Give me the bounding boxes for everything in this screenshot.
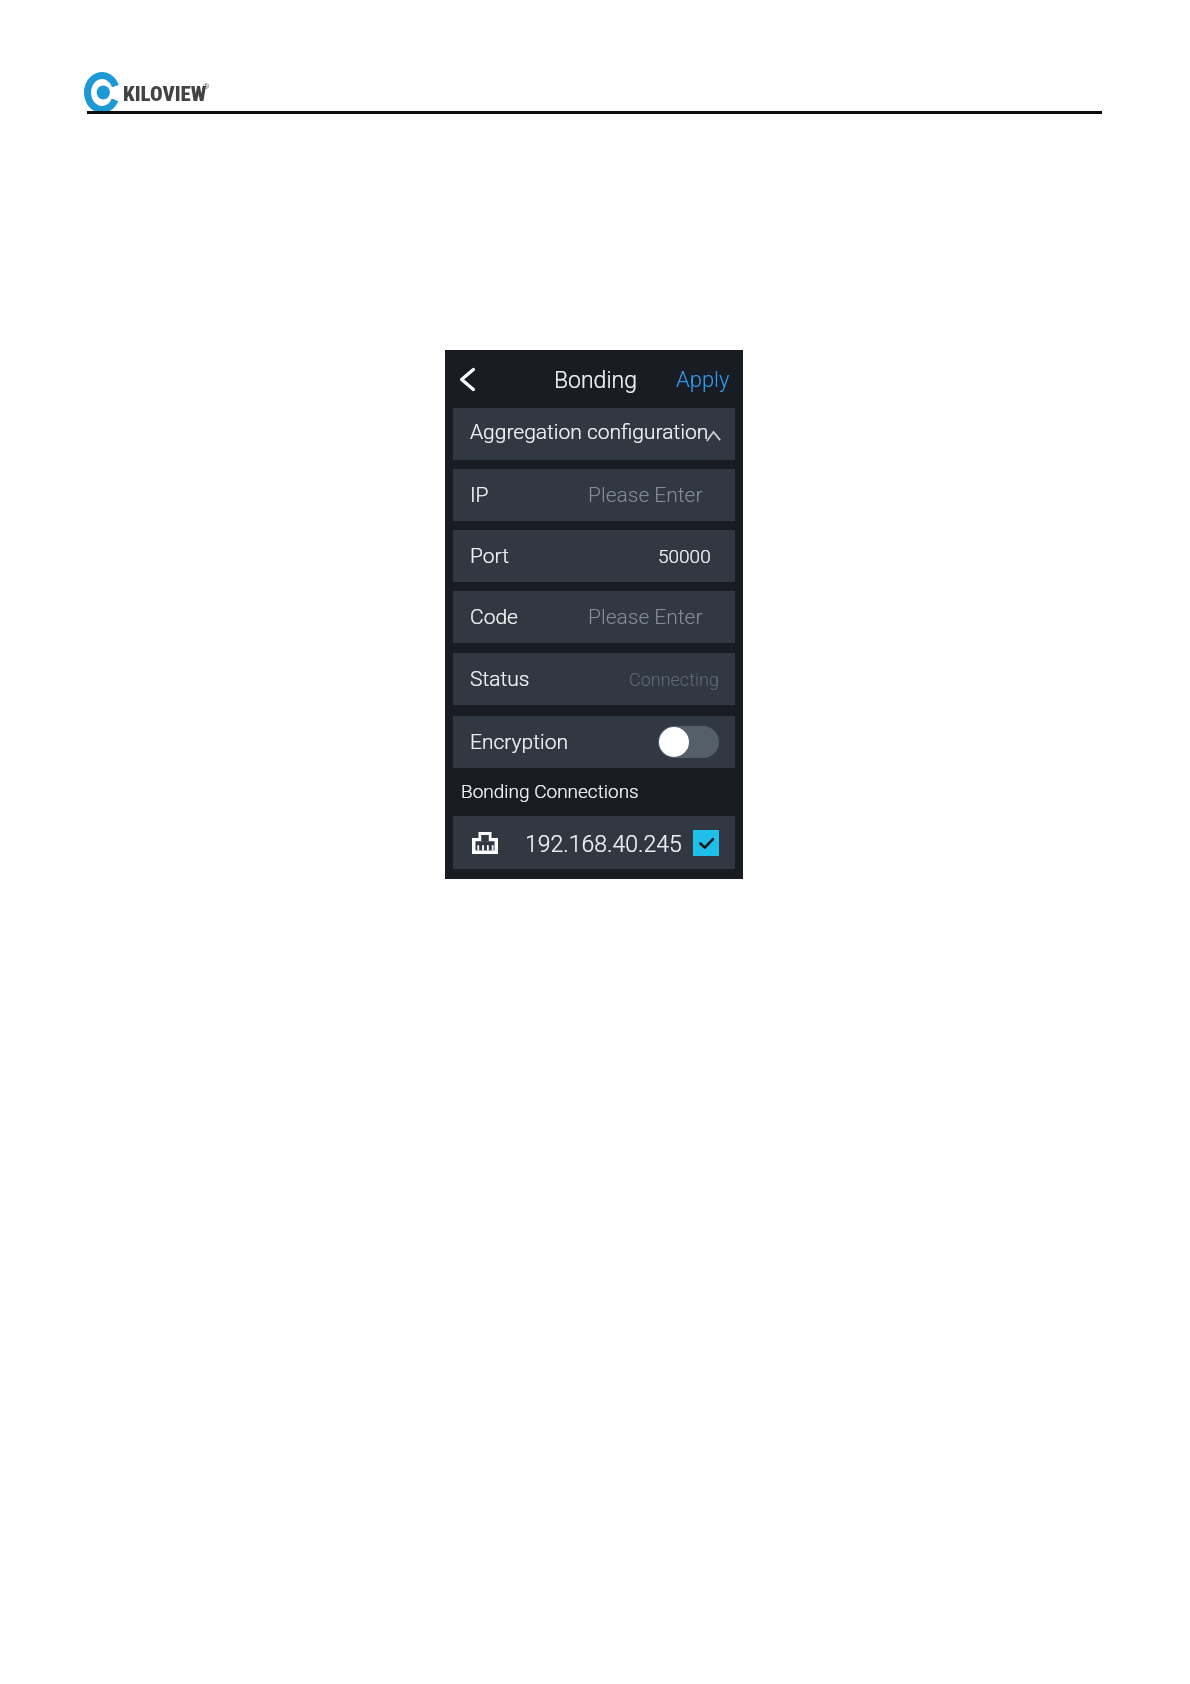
staticText: 192.168.40.245	[525, 831, 682, 858]
staticText: Apply	[676, 367, 730, 393]
staticText: Encryption	[470, 730, 568, 755]
staticText: Please Enter	[588, 605, 703, 630]
staticText: ®	[203, 82, 210, 91]
staticText: IP	[470, 483, 489, 508]
staticText: Port	[470, 544, 509, 569]
button[interactable]: Port	[453, 530, 735, 582]
staticText: Aggregation configuration	[470, 420, 709, 445]
staticText: Please Enter	[588, 483, 703, 508]
staticText: Code	[470, 605, 518, 630]
staticText: Status	[470, 667, 530, 692]
staticText: Bonding Connections	[461, 780, 639, 802]
button[interactable]: Encryption	[453, 716, 735, 768]
button[interactable]: Apply	[667, 352, 735, 405]
button[interactable]: 192.168.40.245	[453, 816, 735, 869]
button[interactable]: Encryption toggle	[658, 726, 719, 758]
button[interactable]: IP	[453, 469, 735, 521]
button[interactable]: Selected, 192.168.40.245	[693, 830, 719, 856]
staticText: 50000	[658, 545, 711, 567]
staticText: Connecting	[629, 669, 719, 690]
button[interactable]: Aggregation configuration	[453, 408, 735, 460]
button[interactable]: Code	[453, 591, 735, 643]
staticText: KILOVIEW	[123, 82, 207, 107]
staticText: Bonding	[554, 367, 637, 394]
button[interactable]: Status	[453, 653, 735, 705]
button[interactable]: Back	[445, 350, 491, 407]
